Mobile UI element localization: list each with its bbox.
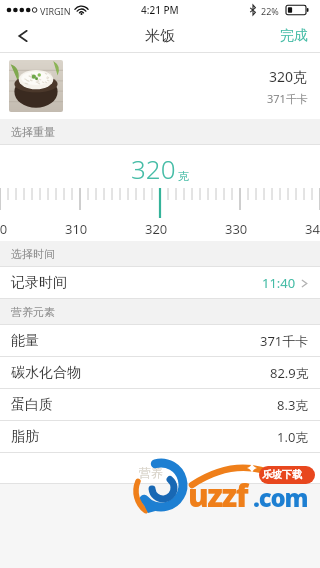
staticText: 330 (225, 220, 248, 238)
staticText: 米饭 (145, 27, 175, 46)
button[interactable]: 320克 (0, 53, 320, 119)
button[interactable]: 记录时间 (0, 267, 320, 299)
staticText: 371千卡 (260, 332, 309, 350)
staticText: 乐坡下载 (262, 468, 302, 481)
staticText: 完成 (280, 27, 308, 45)
staticText: 8.3克 (277, 396, 309, 414)
staticText: 营养 (139, 465, 163, 480)
button[interactable]: 完成 (268, 20, 320, 52)
button[interactable]: 脂肪 (0, 421, 320, 453)
staticText: 记录时间 (11, 274, 67, 292)
staticText: 选择重量 (11, 125, 55, 139)
staticText: 4:21 PM (141, 3, 179, 17)
staticText: .com (253, 481, 308, 514)
staticText: uzzf (188, 474, 248, 516)
staticText: 营养元素 (11, 305, 55, 319)
staticText: 碳水化合物 (11, 364, 81, 382)
staticText: 320克 (269, 67, 308, 86)
staticText: 371千卡 (267, 91, 308, 106)
button[interactable]: 碳水化合物 (0, 357, 320, 389)
staticText: VIRGIN (40, 5, 71, 17)
staticText: 310 (65, 220, 88, 238)
staticText: 选择时间 (11, 247, 55, 261)
staticText: 320 (131, 151, 176, 186)
staticText: 能量 (11, 332, 39, 350)
staticText: 340 (305, 220, 320, 238)
button[interactable]: 能量 (0, 325, 320, 357)
staticText: 82.9克 (270, 364, 309, 382)
staticText: 蛋白质 (11, 396, 53, 414)
button[interactable]: 蛋白质 (0, 389, 320, 421)
staticText: 320 (145, 220, 168, 238)
staticText: 11:40 (262, 274, 296, 292)
staticText: 克 (178, 169, 189, 183)
staticText: 300 (0, 220, 8, 238)
button[interactable]: 320 (0, 145, 320, 241)
staticText: 脂肪 (11, 428, 39, 446)
button[interactable]: Back (0, 20, 44, 52)
staticText: 22% (261, 5, 279, 17)
staticText: 1.0克 (277, 428, 309, 446)
